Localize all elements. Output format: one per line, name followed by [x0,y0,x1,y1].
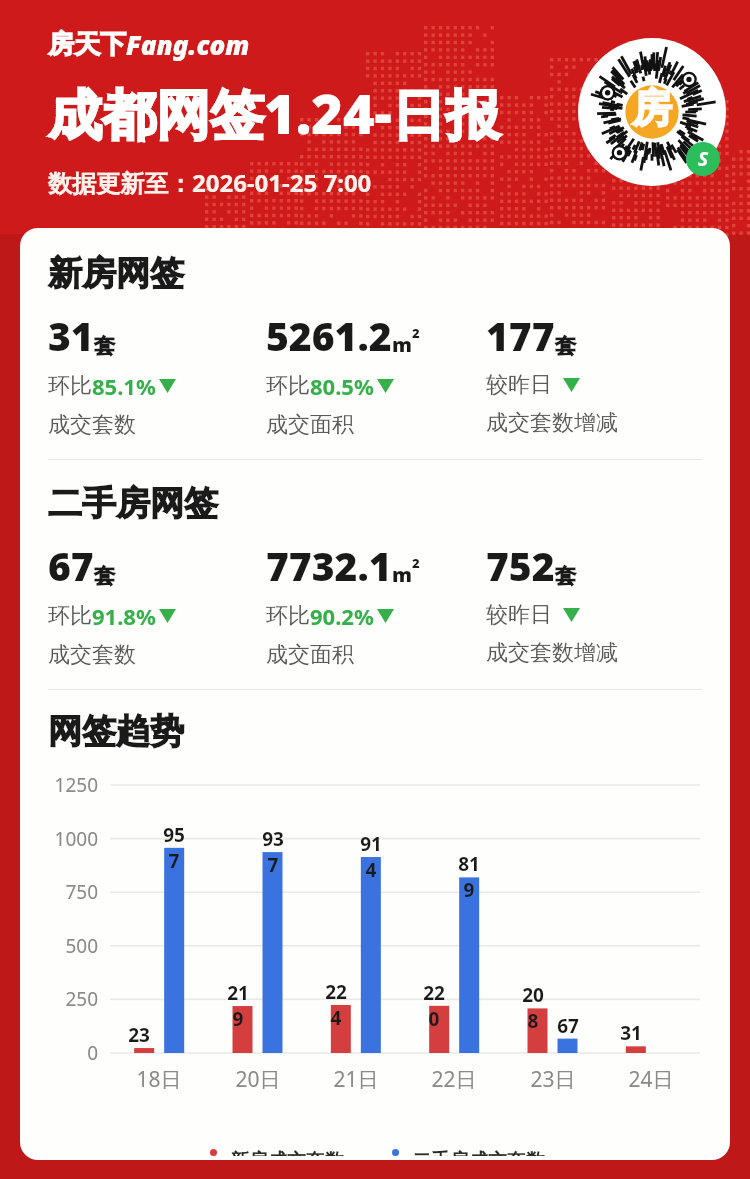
staticText: 0 [20,1040,98,1066]
staticText: 1000 [20,826,98,852]
staticText: 二手房成交套数 [412,1149,545,1156]
staticText: 67 [48,539,94,592]
staticText: 套 [94,563,115,589]
staticText: 成都网签1.24-日报 [48,76,500,150]
staticText: 新房成交套数 [230,1149,344,1156]
staticText: 新房网签 [48,252,184,295]
staticText: 224 [321,979,351,1031]
staticText: 房天下 [48,28,126,61]
staticText: 91.8% [92,601,156,631]
staticText: 85.1% [92,371,156,401]
staticText: 220 [419,980,449,1032]
staticText: 环比 [266,372,310,400]
staticText: 套 [555,333,576,359]
staticText: 23 [124,1022,154,1048]
staticText: m [392,331,412,358]
staticText: 208 [518,982,548,1034]
staticText: 250 [20,986,98,1012]
staticText: S [698,146,709,172]
staticText: 网签趋势 [48,710,184,753]
staticText: 24日 [621,1065,681,1094]
staticText: 房 [632,83,672,133]
staticText: 21日 [326,1065,386,1094]
staticText: 500 [20,933,98,959]
staticText: 二手房网签 [48,482,218,525]
button[interactable]: 新房成交套数 [202,1145,348,1160]
staticText: 177 [486,309,555,362]
staticText: 18日 [129,1065,189,1094]
staticText: 219 [223,980,253,1032]
staticText: 套 [94,333,115,359]
staticText: 环比 [48,372,92,400]
staticText: 2 [412,554,420,572]
button[interactable]: 扫描二维码关注 [578,38,726,186]
staticText: 22日 [424,1065,484,1094]
staticText: 20日 [228,1065,288,1094]
staticText: 套 [555,563,576,589]
staticText: 7732.1 [266,539,392,592]
staticText: 成交面积 [266,411,354,439]
staticText: 1250 [20,772,98,798]
staticText: 成交面积 [266,641,354,669]
button[interactable]: 二手房成交套数 [384,1145,549,1160]
staticText: 环比 [48,602,92,630]
staticText: 23日 [523,1065,583,1094]
staticText: 67 [553,1013,583,1039]
staticText: 752 [486,539,555,592]
staticText: 成交套数 [48,411,136,439]
staticText: 31 [616,1020,646,1046]
staticText: 937 [258,826,288,878]
staticText: 5261.2 [266,309,392,362]
staticText: 较昨日 [486,371,552,399]
staticText: Fang.com [126,27,250,62]
staticText: 90.2% [310,601,374,631]
staticText: 成交套数增减 [486,409,618,437]
staticText: 2 [412,324,420,342]
staticText: 819 [454,851,484,903]
staticText: 数据更新至：2026-01-25 7:00 [48,166,372,199]
staticText: 957 [159,822,189,874]
staticText: 80.5% [310,371,374,401]
staticText: 较昨日 [486,601,552,629]
staticText: 成交套数 [48,641,136,669]
staticText: 成交套数增减 [486,639,618,667]
staticText: 914 [356,831,386,883]
staticText: 环比 [266,602,310,630]
staticText: 750 [20,879,98,905]
staticText: 31 [48,309,94,362]
button[interactable]: 房天下 [48,27,250,62]
staticText: m [392,561,412,588]
